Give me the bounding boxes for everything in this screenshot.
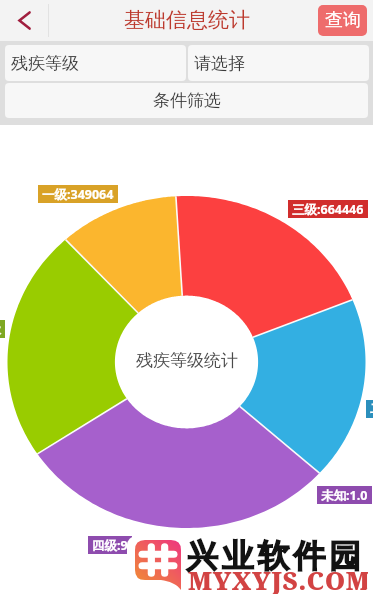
button[interactable]: 请选择 [188, 45, 369, 81]
staticText: 查询 [325, 9, 361, 32]
button[interactable]: 条件筛选 [5, 83, 368, 118]
staticText: 一级:349064 [42, 186, 114, 203]
button[interactable]: 查询 [318, 5, 367, 36]
staticText: 基础信息统计 [124, 7, 250, 33]
staticText: 残疾等级统计 [136, 350, 238, 371]
staticText: 兴业软件园 [184, 536, 363, 576]
button[interactable]: Back [0, 0, 48, 41]
staticText: 五级 [0, 321, 1, 337]
staticText: 残疾等级 [11, 53, 79, 74]
staticText: 未知:1.0 [321, 487, 368, 504]
staticText: 二级 [370, 401, 373, 417]
button[interactable]: 残疾等级 [5, 45, 186, 81]
staticText: 四级:9 [92, 537, 128, 554]
staticText: 请选择 [194, 53, 245, 74]
staticText: 三级:664446 [292, 201, 364, 218]
staticText: MYXYJS.COM [188, 563, 368, 594]
staticText: 条件筛选 [153, 90, 221, 111]
